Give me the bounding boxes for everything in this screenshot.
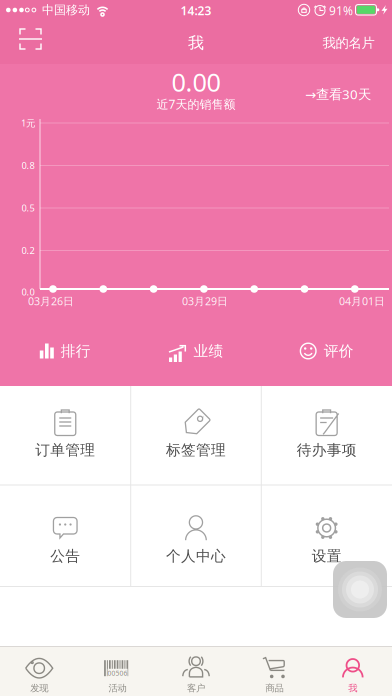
staticText: 我 <box>348 682 357 694</box>
button[interactable]: 设置 <box>261 485 392 587</box>
button[interactable]: 扫一扫 <box>10 19 51 59</box>
staticText: 发现 <box>30 682 48 694</box>
button[interactable]: 订单管理 <box>0 386 131 485</box>
staticText: 评价 <box>324 342 354 360</box>
staticText: 近7天的销售额 <box>156 96 235 112</box>
staticText: 订单管理 <box>35 441 95 459</box>
button[interactable]: 我 <box>314 647 392 696</box>
button[interactable]: 商品 <box>235 647 314 696</box>
staticText: 我 <box>188 33 204 53</box>
button[interactable]: 待办事项 <box>261 386 392 485</box>
button[interactable]: 公告 <box>0 485 131 587</box>
staticText: 标签管理 <box>166 441 226 459</box>
button[interactable]: 排行 <box>0 329 130 373</box>
staticText: 0.8 <box>21 159 34 172</box>
staticText: 我的名片 <box>322 35 374 51</box>
button[interactable]: 评价 <box>262 329 392 373</box>
staticText: 0.0 <box>21 286 34 298</box>
staticText: 待办事项 <box>297 441 357 459</box>
button[interactable]: 个人中心 <box>131 485 261 587</box>
button[interactable]: →查看30天 <box>305 79 371 109</box>
staticText: 个人中心 <box>166 547 226 565</box>
staticText: →查看30天 <box>305 85 371 103</box>
staticText: 0.2 <box>21 244 34 257</box>
button[interactable]: 发现 <box>0 647 78 696</box>
staticText: 公告 <box>50 547 80 565</box>
staticText: 03月26日 <box>28 294 74 308</box>
staticText: 商品 <box>265 682 283 694</box>
button[interactable]: 客户 <box>157 647 235 696</box>
staticText: 04月01日 <box>339 294 385 308</box>
staticText: 中国移动 <box>42 3 90 17</box>
button[interactable]: 标签管理 <box>131 386 261 485</box>
staticText: 03月29日 <box>182 294 228 308</box>
staticText: 14:23 <box>180 2 211 18</box>
staticText: 活动 <box>109 682 127 694</box>
button[interactable]: AssistiveTouch <box>333 561 387 618</box>
staticText: 客户 <box>187 682 205 694</box>
staticText: 业绩 <box>193 342 223 360</box>
staticText: 0.00 <box>171 65 220 99</box>
staticText: 0.5 <box>21 202 34 214</box>
button[interactable]: 业绩 <box>131 329 261 373</box>
staticText: 设置 <box>312 547 342 565</box>
staticText: 91% <box>329 2 353 18</box>
staticText: 00506 <box>108 669 128 678</box>
staticText: 1元 <box>21 117 35 129</box>
staticText: 排行 <box>61 342 91 360</box>
button[interactable]: 我的名片 <box>322 27 374 59</box>
button[interactable]: 00506 <box>78 647 157 696</box>
